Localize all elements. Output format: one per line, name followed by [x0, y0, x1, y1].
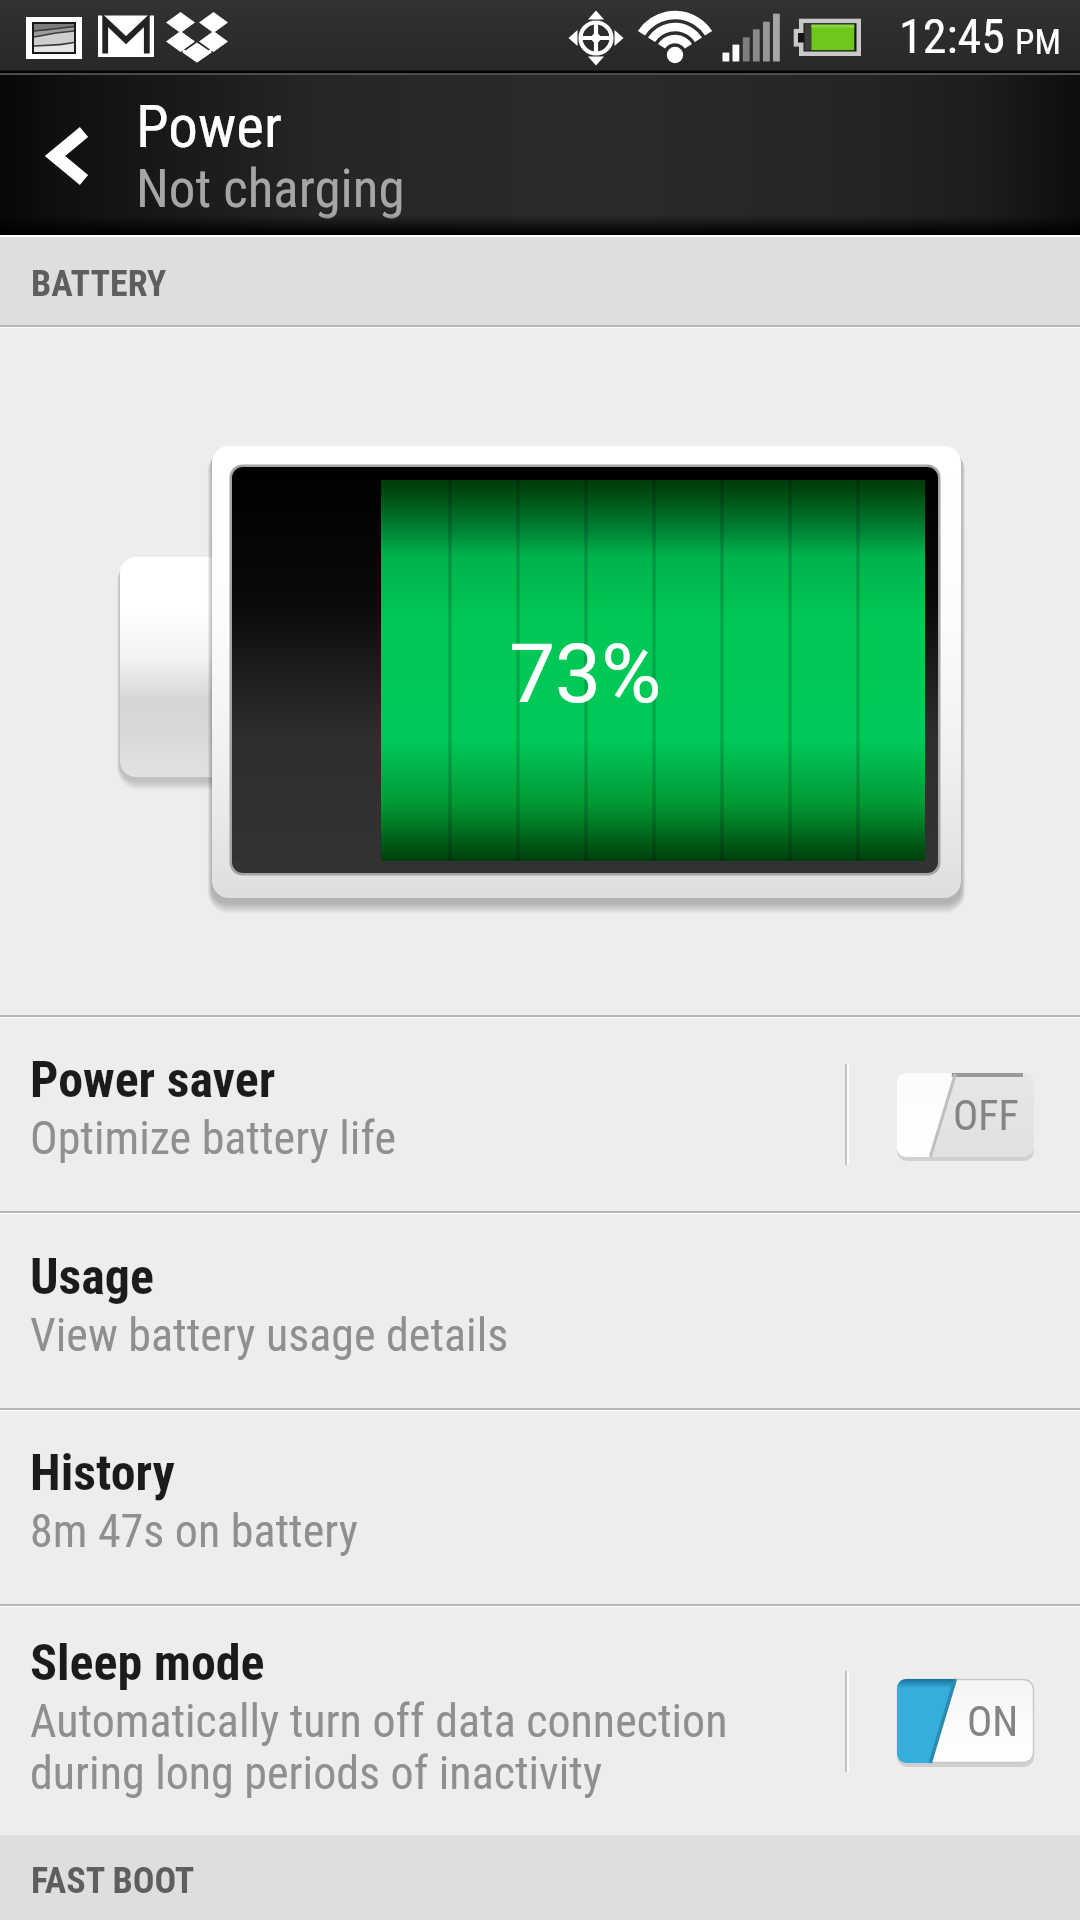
- staticText: 12:45: [899, 8, 1005, 64]
- staticText: Not charging: [136, 158, 405, 220]
- button[interactable]: History: [0, 1411, 1080, 1604]
- staticText: View battery usage details: [30, 1308, 509, 1362]
- staticText: FAST BOOT: [31, 1860, 195, 1902]
- staticText: Power saver: [30, 1051, 276, 1110]
- staticText: PM: [1015, 22, 1061, 63]
- staticText: BATTERY: [31, 263, 167, 305]
- staticText: Power: [136, 92, 282, 161]
- staticText: 8m 47s on battery: [30, 1504, 358, 1558]
- staticText: 73%: [509, 626, 662, 722]
- button[interactable]: Back: [0, 73, 140, 237]
- staticText: OFF: [953, 1091, 1019, 1140]
- button[interactable]: Sleep mode: [0, 1607, 1080, 1835]
- staticText: ON: [967, 1697, 1019, 1746]
- button[interactable]: Usage: [0, 1214, 1080, 1408]
- button[interactable]: Power saver off: [897, 1073, 1034, 1157]
- staticText: Optimize battery life: [30, 1111, 396, 1165]
- button[interactable]: Back: [0, 73, 1080, 237]
- button[interactable]: Power saver: [0, 1018, 1080, 1211]
- staticText: History: [30, 1444, 175, 1503]
- staticText: Automatically turn off data connection d…: [30, 1694, 728, 1800]
- button[interactable]: Sleep mode on: [897, 1679, 1034, 1763]
- staticText: Usage: [30, 1248, 154, 1307]
- staticText: Sleep mode: [30, 1634, 265, 1693]
